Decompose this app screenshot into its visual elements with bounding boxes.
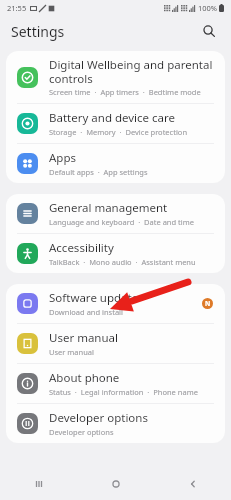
staticText: Developer options (49, 410, 148, 426)
button[interactable]: Back (154, 467, 231, 500)
staticText: User manual (49, 347, 94, 357)
staticText: Download and install (49, 307, 123, 317)
staticText: 21:55 (7, 3, 27, 13)
staticText: General management (49, 200, 168, 216)
button[interactable]: Apps (6, 144, 225, 183)
button[interactable]: Accessibility (6, 234, 225, 273)
button[interactable]: Digital Wellbeing and parental controls (6, 51, 225, 104)
staticText: Storage · Memory · Device protection (49, 127, 188, 137)
staticText: Screen time · App timers · Bedtime mode (49, 87, 201, 97)
button[interactable]: Recents (0, 467, 77, 500)
staticText: Default apps · App settings (49, 167, 148, 177)
button[interactable]: Battery and device care (6, 104, 225, 144)
staticText: Accessibility (49, 240, 114, 256)
button[interactable]: Developer options (6, 404, 225, 443)
button[interactable]: Software update (6, 284, 225, 324)
staticText: About phone (49, 370, 120, 386)
staticText: Software update (49, 290, 139, 306)
staticText: Developer options (49, 427, 114, 437)
button[interactable]: User manual (6, 324, 225, 364)
button[interactable]: General management (6, 194, 225, 234)
staticText: 100% (198, 3, 218, 13)
button[interactable]: Home (77, 467, 154, 500)
staticText: User manual (49, 330, 118, 346)
button[interactable]: Search (198, 20, 220, 42)
staticText: Language and keyboard · Date and time (49, 217, 194, 227)
staticText: Battery and device care (49, 110, 176, 126)
staticText: Status · Legal information · Phone name (49, 387, 198, 397)
staticText: Digital Wellbeing and parental controls (49, 57, 213, 86)
staticText: TalkBack · Mono audio · Assistant menu (49, 257, 196, 267)
button[interactable]: About phone (6, 364, 225, 404)
staticText: N (205, 299, 211, 308)
staticText: Apps (49, 150, 77, 166)
staticText: Settings (11, 22, 65, 41)
